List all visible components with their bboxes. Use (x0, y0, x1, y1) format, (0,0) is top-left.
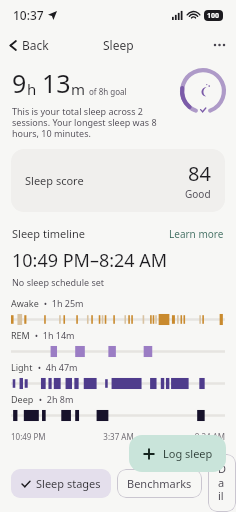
staticText: m (71, 79, 86, 99)
button[interactable]: Benchmarks (117, 469, 202, 498)
staticText: Back (22, 37, 49, 53)
staticText: of 8h goal (89, 86, 127, 97)
staticText: 8:24 AM (154, 431, 225, 442)
staticText: h (27, 79, 37, 99)
staticText: 84 (188, 160, 211, 187)
staticText: • 1h 14m (30, 329, 75, 341)
staticText: No sleep schedule set (12, 276, 105, 288)
staticText: 100 (207, 11, 220, 21)
staticText: Light (11, 361, 33, 373)
staticText: • 2h 8m (34, 393, 74, 405)
staticText: 9 (12, 66, 27, 100)
staticText: Sleep timeline (12, 226, 85, 241)
staticText: 10:49 PM (11, 431, 83, 442)
staticText: This is your total sleep across 2 sessio… (12, 105, 174, 139)
staticText: 10:49 PM–8:24 AM (12, 248, 168, 273)
staticText: Awake (11, 297, 39, 309)
button[interactable]: Daily av (208, 454, 236, 512)
staticText: Sleep score (25, 173, 84, 188)
staticText: Sleep (103, 37, 134, 53)
button[interactable]: Learn more (169, 227, 224, 241)
staticText: 13 (42, 66, 71, 100)
staticText: Benchmarks (127, 476, 192, 491)
staticText: 10:37 (13, 7, 44, 23)
staticText: Learn more (169, 227, 224, 241)
button[interactable]: Log sleep (129, 435, 226, 472)
button[interactable]: Sleep score (11, 149, 225, 212)
button[interactable]: Back (0, 33, 57, 57)
staticText: Sleep stages (36, 476, 101, 491)
staticText: • 4h 47m (33, 361, 78, 373)
staticText: 3:37 AM (83, 431, 154, 442)
staticText: REM (11, 329, 30, 341)
button[interactable]: Sleep stages (11, 469, 111, 498)
staticText: Log sleep (163, 446, 213, 461)
staticText: Daily av (218, 461, 226, 505)
staticText: • 1h 25m (39, 297, 84, 309)
staticText: Deep (11, 393, 34, 405)
staticText: Good (185, 187, 211, 201)
button[interactable]: More options (203, 33, 236, 57)
